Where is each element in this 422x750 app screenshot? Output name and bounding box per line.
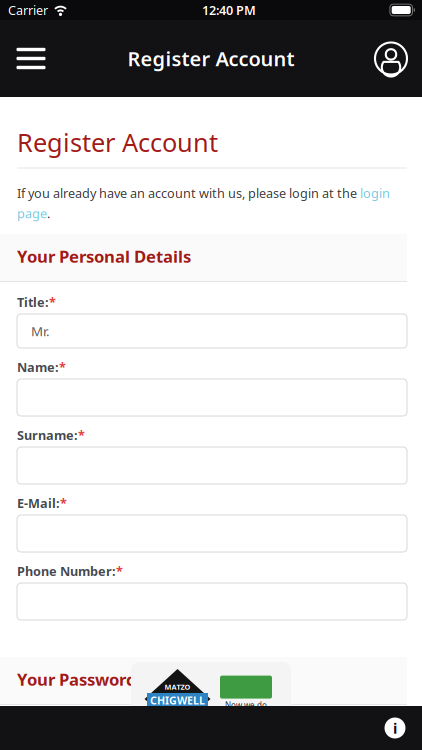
staticText: Now we do <box>225 700 267 710</box>
staticText: Name: <box>17 358 59 376</box>
staticText: E-Mail: <box>17 494 60 512</box>
staticText: Register Account <box>17 125 218 159</box>
staticText: * <box>49 293 56 311</box>
staticText: Register Account <box>127 45 294 72</box>
staticText: * <box>60 494 67 512</box>
staticText: * <box>59 358 66 376</box>
staticText: * <box>78 426 85 444</box>
staticText: Your Password <box>17 668 137 691</box>
staticText: Surname: <box>17 426 78 444</box>
button[interactable]: My account <box>360 20 422 97</box>
staticText: page <box>17 205 47 222</box>
button[interactable]: About this ad <box>384 717 422 739</box>
staticText: i <box>393 718 397 738</box>
staticText: * <box>116 562 123 580</box>
staticText: If you already have an account with us, … <box>17 184 360 202</box>
staticText: MATZO <box>164 682 190 692</box>
staticText: Phone Number: <box>17 562 116 580</box>
staticText: Your Personal Details <box>17 245 191 268</box>
staticText: Carrier <box>8 1 48 19</box>
button[interactable]: Menu <box>0 20 62 97</box>
staticText: . <box>47 205 50 222</box>
staticText: Title: <box>17 293 49 311</box>
staticText: CHIGWELL <box>150 693 205 707</box>
staticText: 12:40 PM <box>202 1 256 19</box>
staticText: login <box>360 184 390 202</box>
staticText: Mr. <box>31 322 50 340</box>
